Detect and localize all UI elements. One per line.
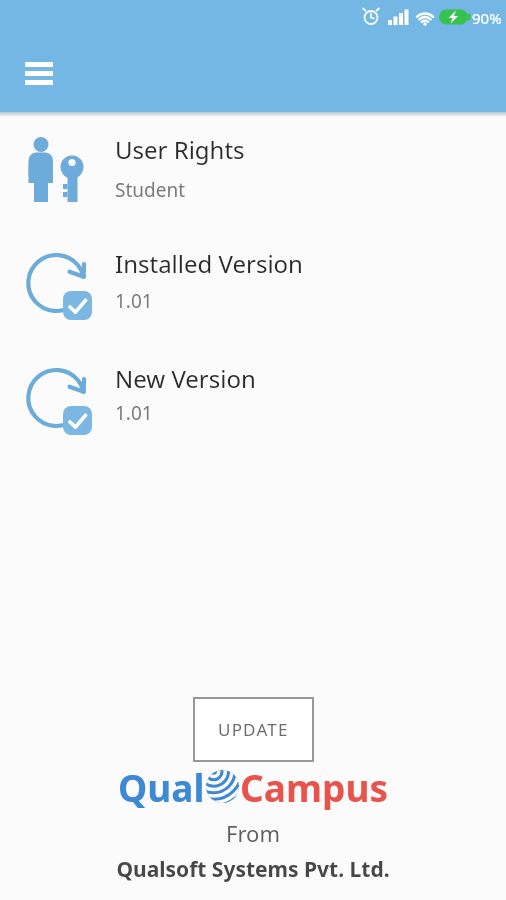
staticText: UPDATE [218, 718, 289, 741]
staticText: Qual [118, 762, 205, 810]
button[interactable] [22, 56, 58, 90]
staticText: Campus [240, 762, 388, 810]
staticText: User Rights [115, 133, 245, 166]
staticText: 90% [472, 8, 502, 28]
button[interactable]: UPDATE [193, 697, 314, 762]
staticText: 1.01 [115, 288, 153, 314]
staticText: Student [115, 177, 186, 203]
staticText: Installed Version [115, 247, 303, 280]
staticText: New Version [115, 362, 256, 395]
staticText: 1.01 [115, 400, 153, 426]
staticText: From [0, 818, 506, 848]
staticText: Qualsoft Systems Pvt. Ltd. [0, 855, 506, 884]
